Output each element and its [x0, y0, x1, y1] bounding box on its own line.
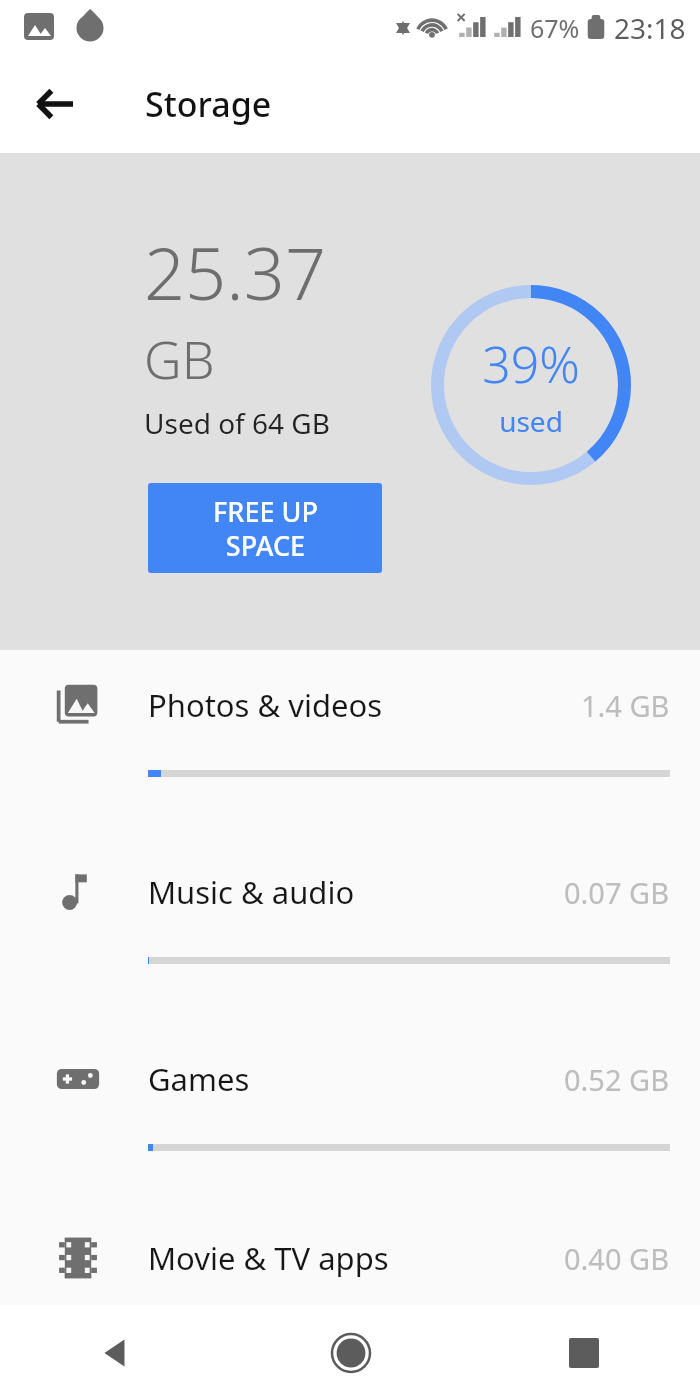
staticText: 39%	[482, 330, 580, 398]
staticText: 25.37	[144, 223, 327, 321]
staticText: 1.4 GB	[581, 686, 670, 725]
staticText: used	[499, 402, 563, 440]
button[interactable]: Music & audio	[0, 837, 700, 1024]
staticText: Storage	[145, 81, 272, 127]
button[interactable]: Back	[79, 1315, 155, 1391]
button[interactable]: Photos & videos	[0, 650, 700, 837]
button[interactable]: Recent apps	[546, 1315, 622, 1391]
button[interactable]: FREE UP SPACE	[148, 483, 382, 573]
staticText: FREE UP SPACE	[213, 493, 318, 564]
staticText: 67%	[530, 11, 580, 45]
button[interactable]: Back	[22, 71, 88, 137]
staticText: 0.40 GB	[564, 1239, 670, 1278]
staticText: Games	[148, 1058, 564, 1100]
staticText: Movie & TV apps	[148, 1237, 564, 1279]
staticText: Used of 64 GB	[144, 404, 330, 442]
staticText: Music & audio	[148, 871, 564, 913]
staticText: GB	[144, 323, 215, 394]
staticText: 0.07 GB	[564, 873, 670, 912]
button[interactable]: Games	[0, 1024, 700, 1211]
button[interactable]: Home	[313, 1315, 389, 1391]
staticText: 0.52 GB	[564, 1060, 670, 1099]
staticText: 23:18	[614, 9, 686, 47]
button[interactable]: Movie & TV apps	[0, 1211, 700, 1305]
staticText: Photos & videos	[148, 684, 581, 726]
